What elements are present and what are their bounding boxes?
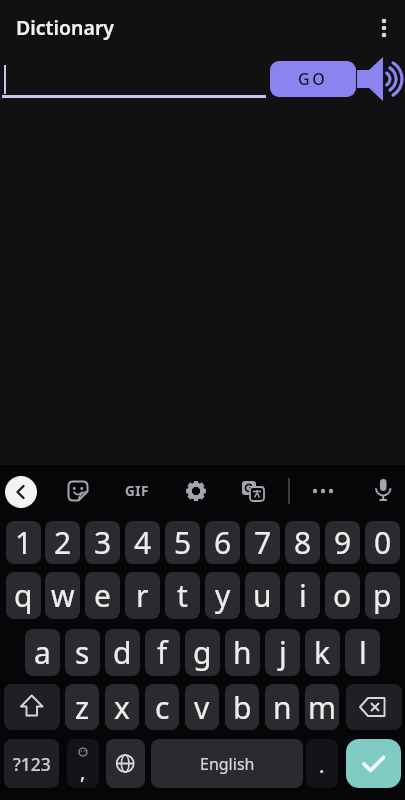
staticText: English (200, 753, 255, 775)
staticText: i (299, 575, 307, 616)
button[interactable]: v (185, 684, 219, 730)
button[interactable]: English (151, 739, 303, 788)
staticText: b (233, 687, 252, 728)
staticText: ?123 (13, 752, 51, 776)
button[interactable]: d (105, 629, 140, 676)
button[interactable] (5, 476, 37, 508)
button[interactable]: t (165, 572, 200, 619)
button[interactable]: m (305, 684, 339, 730)
button[interactable]: 3 (85, 521, 120, 564)
staticText: 3 (94, 522, 112, 563)
staticText: s (75, 632, 90, 673)
staticText: f (157, 632, 168, 673)
button[interactable]: 8 (285, 521, 320, 564)
staticText: 8 (294, 522, 312, 563)
staticText: z (75, 687, 90, 728)
staticText: k (314, 632, 331, 673)
staticText: 9 (334, 522, 352, 563)
button[interactable]: 4 (125, 521, 160, 564)
staticText: l (359, 632, 367, 673)
button[interactable]: g (185, 629, 220, 676)
staticText: 1 (15, 522, 33, 563)
button[interactable]: a (25, 629, 60, 676)
button[interactable] (66, 479, 90, 503)
staticText: w (51, 575, 75, 616)
button[interactable]: s (65, 629, 100, 676)
staticText: 6 (214, 522, 232, 563)
button[interactable]: n (265, 684, 299, 730)
staticText: r (136, 575, 149, 616)
button[interactable]: 1 (6, 521, 41, 564)
staticText: 4 (134, 522, 152, 563)
staticText: v (194, 687, 210, 728)
button[interactable]: w (45, 572, 80, 619)
button[interactable] (356, 55, 405, 103)
button[interactable] (346, 739, 401, 788)
button[interactable]: GO (270, 61, 356, 97)
button[interactable]: u (245, 572, 280, 619)
staticText: GO (298, 68, 328, 90)
staticText: 7 (254, 522, 272, 563)
staticText: a (34, 632, 51, 673)
button[interactable]: h (225, 629, 260, 676)
staticText: t (177, 575, 188, 616)
button[interactable] (372, 12, 396, 44)
staticText: y (215, 575, 231, 616)
button[interactable] (346, 684, 402, 730)
button[interactable] (311, 479, 335, 503)
button[interactable]: o (325, 572, 360, 619)
button[interactable] (4, 684, 60, 730)
staticText: m (308, 687, 337, 728)
staticText: h (233, 632, 252, 673)
button[interactable] (241, 479, 265, 503)
button[interactable]: 6 (205, 521, 240, 564)
staticText: 0 (374, 522, 392, 563)
staticText: e (94, 575, 111, 616)
button[interactable]: 5 (165, 521, 200, 564)
button[interactable] (106, 739, 145, 788)
staticText: Dictionary (16, 14, 115, 41)
button[interactable] (184, 479, 208, 503)
button[interactable]: p (365, 572, 400, 619)
staticText: u (253, 575, 272, 616)
button[interactable]: 2 (45, 521, 80, 564)
button[interactable]: y (205, 572, 240, 619)
staticText: o (333, 575, 352, 616)
button[interactable]: 7 (245, 521, 280, 564)
staticText: p (373, 575, 392, 616)
button[interactable]: i (285, 572, 320, 619)
staticText: 2 (54, 522, 72, 563)
button[interactable]: x (105, 684, 139, 730)
button[interactable]: r (125, 572, 160, 619)
button[interactable]: k (305, 629, 340, 676)
button[interactable]: l (345, 629, 380, 676)
button[interactable]: f (145, 629, 180, 676)
button[interactable]: GIF (117, 481, 157, 501)
staticText: q (14, 575, 33, 616)
staticText: GIF (125, 482, 149, 500)
button[interactable]: b (225, 684, 259, 730)
button[interactable]: q (6, 572, 41, 619)
button[interactable]: c (145, 684, 179, 730)
staticText: d (113, 632, 132, 673)
button[interactable]: , (67, 739, 99, 788)
staticText: , (80, 758, 86, 785)
button[interactable]: j (265, 629, 300, 676)
button[interactable]: e (85, 572, 120, 619)
staticText: g (193, 632, 212, 673)
staticText: c (155, 687, 170, 728)
button[interactable]: 9 (325, 521, 360, 564)
button[interactable]: z (65, 684, 99, 730)
button[interactable] (306, 739, 338, 788)
button[interactable]: 0 (365, 521, 400, 564)
staticText: n (273, 687, 292, 728)
button[interactable] (371, 478, 395, 502)
staticText: 5 (174, 522, 192, 563)
staticText: x (114, 687, 130, 728)
button[interactable]: ?123 (4, 739, 59, 788)
staticText: j (279, 632, 287, 673)
